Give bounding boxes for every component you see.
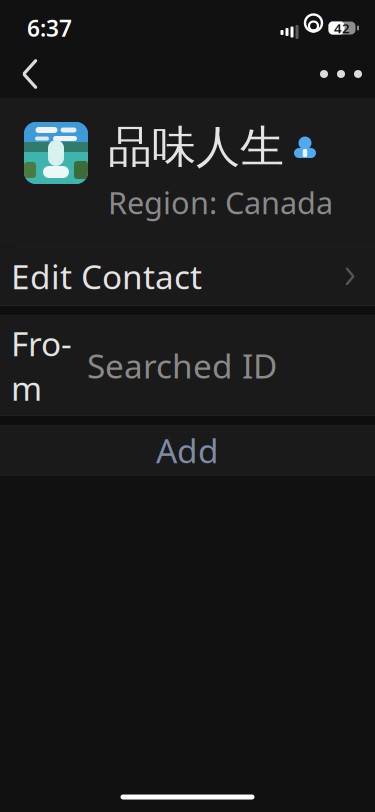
button[interactable]: Edit Contact bbox=[0, 247, 375, 305]
button[interactable]: 品味人生 bbox=[0, 98, 375, 247]
button[interactable]: Back bbox=[4, 52, 56, 96]
staticText: Region: Canada bbox=[108, 182, 333, 223]
staticText: Add bbox=[156, 428, 219, 472]
button[interactable]: More bbox=[311, 52, 371, 96]
staticText: Searched ID bbox=[87, 343, 277, 388]
button[interactable]: Add bbox=[0, 426, 375, 475]
staticText: From bbox=[11, 321, 72, 410]
staticText: Edit Contact bbox=[11, 254, 202, 298]
staticText: 品味人生 bbox=[108, 120, 284, 174]
staticText: 42 bbox=[334, 19, 350, 37]
staticText: 6:37 bbox=[27, 13, 72, 43]
